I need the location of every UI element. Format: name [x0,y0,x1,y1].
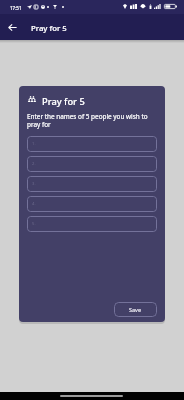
button[interactable]: Back [2,17,23,38]
staticText: 17:51 [10,5,22,11]
staticText: Pray for 5 [42,95,85,108]
staticText: 2. [32,161,36,167]
button[interactable]: 1. [27,136,157,152]
staticText: 3. [32,181,36,187]
button[interactable]: 4. [27,196,157,212]
staticText: Save [129,306,142,313]
button[interactable]: 2. [27,156,157,172]
staticText: Pray for 5 [31,23,67,34]
staticText: 1. [32,141,36,147]
button[interactable]: 3. [27,176,157,192]
staticText: 4. [32,201,36,207]
button[interactable]: Save [114,302,157,317]
staticText: Enter the names of 5 people you wish to … [27,112,151,129]
staticText: 5. [32,221,36,227]
button[interactable]: 5. [27,216,157,232]
